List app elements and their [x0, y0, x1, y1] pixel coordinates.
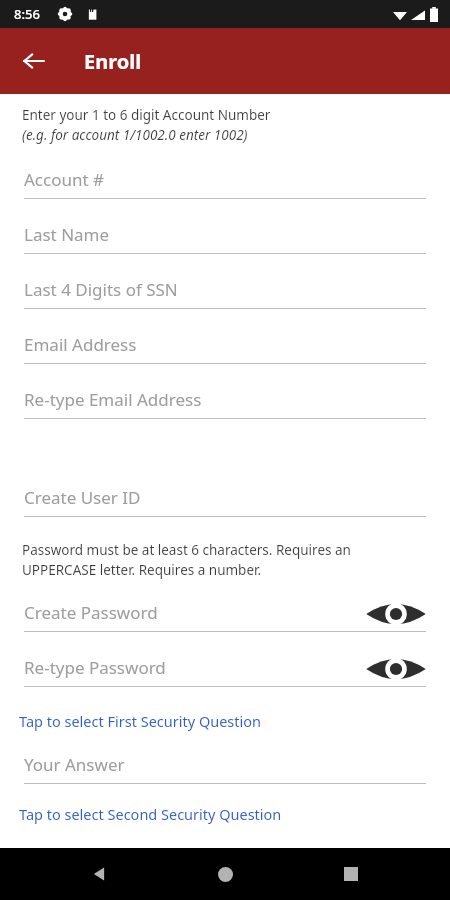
button[interactable]: Show password — [364, 594, 428, 634]
button[interactable]: Create User ID — [0, 474, 450, 529]
staticText: Your Answer — [24, 753, 125, 776]
staticText: Re-type Email Address — [24, 388, 202, 411]
button[interactable]: Email Address — [0, 321, 450, 376]
staticText: Account # — [24, 168, 105, 191]
staticText: Re-type Password — [24, 656, 166, 679]
button[interactable]: Re-type Email Address — [0, 376, 450, 431]
button[interactable]: Last 4 Digits of SSN — [0, 266, 450, 321]
staticText: Enroll — [84, 48, 142, 75]
button[interactable]: Account # — [0, 156, 450, 211]
button[interactable]: Back — [14, 41, 54, 81]
staticText: Last 4 Digits of SSN — [24, 278, 178, 301]
button[interactable]: Back — [78, 853, 120, 895]
staticText: Password must be at least 6 characters. … — [22, 541, 351, 559]
staticText: 8:56 — [14, 5, 40, 23]
button[interactable]: Your Answer — [0, 834, 450, 889]
staticText: Enter your 1 to 6 digit Account Number — [22, 106, 271, 124]
button[interactable]: Home — [204, 853, 246, 895]
staticText: Create Password — [24, 601, 158, 624]
staticText: Create User ID — [24, 486, 141, 509]
button[interactable]: Create Password — [0, 589, 450, 644]
button[interactable]: Last Name — [0, 211, 450, 266]
staticText: Email Address — [24, 333, 137, 356]
button[interactable]: Your Answer — [0, 741, 450, 796]
staticText: (e.g. for account 1/1002.0 enter 1002) — [22, 126, 248, 144]
staticText: UPPERCASE letter. Requires a number. — [22, 561, 262, 579]
staticText: Last Name — [24, 223, 110, 246]
button[interactable]: Show password — [364, 649, 428, 689]
button[interactable]: Tap to select First Security Question — [0, 709, 450, 733]
button[interactable]: Re-type Password — [0, 644, 450, 699]
button[interactable]: Tap to select Second Security Question — [0, 802, 450, 826]
button[interactable]: Recents — [330, 853, 372, 895]
staticText: Your Answer — [24, 846, 125, 869]
